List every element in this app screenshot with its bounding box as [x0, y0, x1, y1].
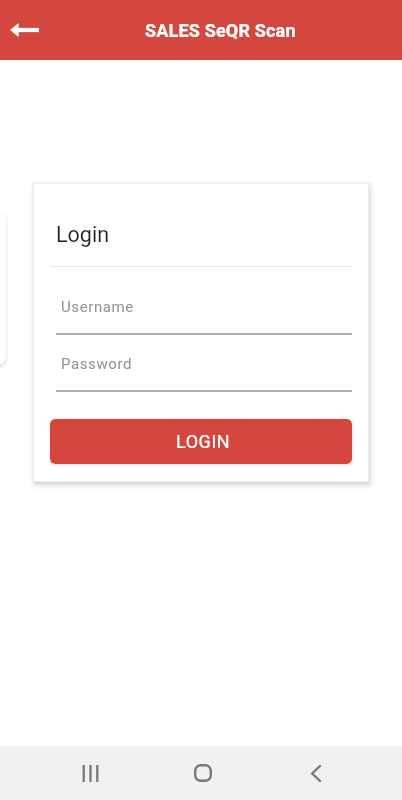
button[interactable]: Back [292, 749, 340, 797]
staticText: LOGIN [176, 431, 231, 452]
staticText: Login [56, 222, 110, 247]
staticText: Username [61, 298, 134, 316]
button[interactable]: Home [179, 749, 227, 797]
button[interactable]: Back [2, 8, 46, 52]
staticText: SALES SeQR Scan [145, 20, 296, 41]
button[interactable]: Recent apps [66, 749, 114, 797]
button[interactable]: LOGIN [50, 419, 352, 464]
staticText: Password [61, 355, 133, 373]
